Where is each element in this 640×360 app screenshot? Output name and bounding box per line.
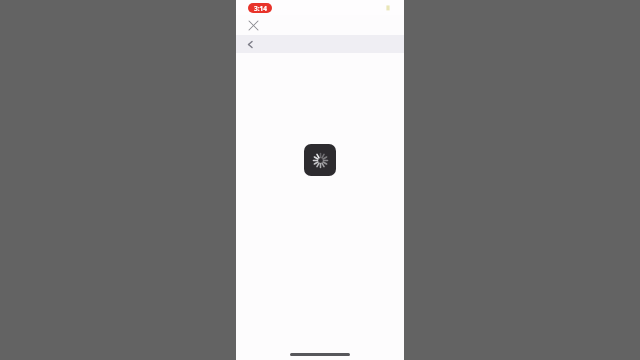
staticText: 3:14 — [254, 4, 267, 13]
button[interactable]: Close — [243, 15, 263, 35]
button[interactable]: Back — [241, 35, 259, 53]
button[interactable]: 3:14 — [248, 3, 272, 13]
